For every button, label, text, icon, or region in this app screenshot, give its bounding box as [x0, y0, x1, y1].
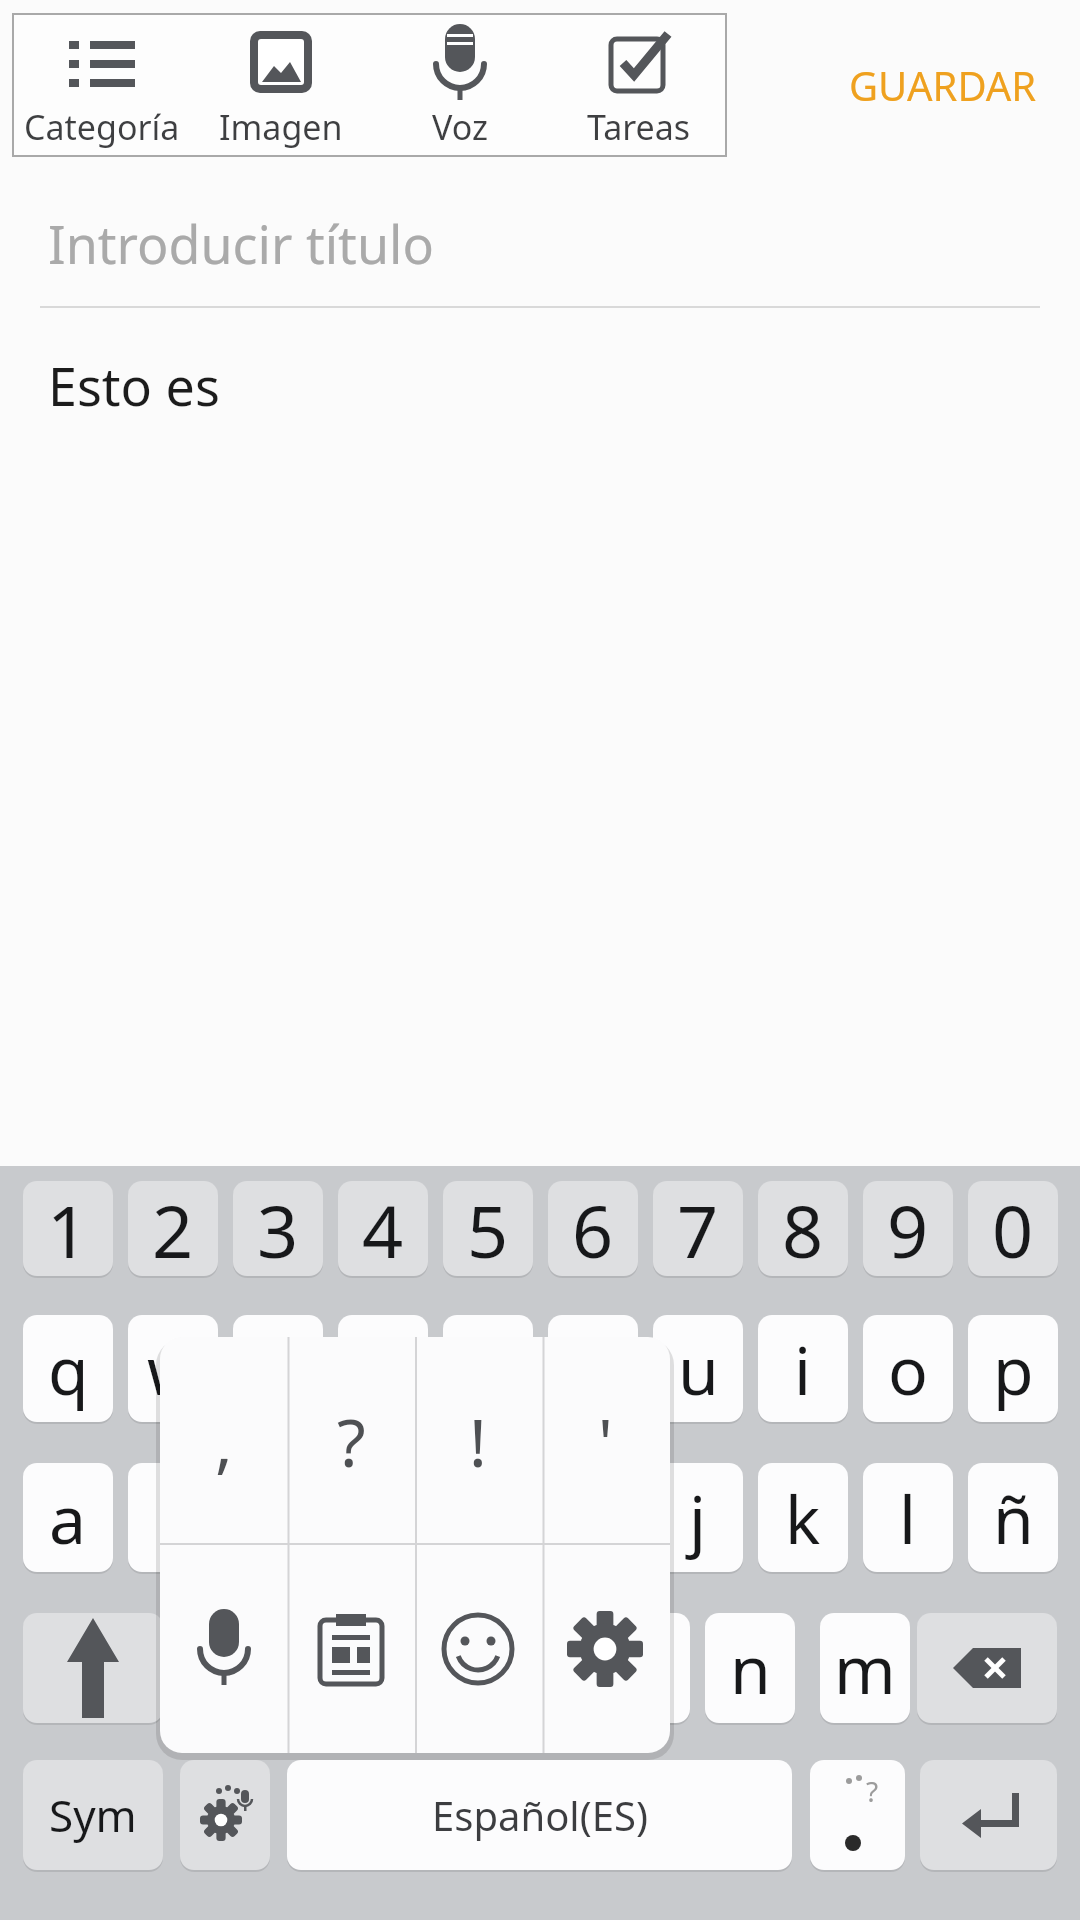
- button[interactable]: g: [443, 1463, 533, 1572]
- staticText: b: [625, 1623, 666, 1713]
- staticText: GUARDAR: [849, 58, 1037, 112]
- button[interactable]: f: [338, 1463, 428, 1572]
- button[interactable]: Categoría: [12, 20, 191, 154]
- staticText: ?: [866, 1772, 879, 1808]
- button[interactable]: p: [968, 1315, 1058, 1422]
- staticText: n: [730, 1623, 771, 1713]
- staticText: j: [689, 1473, 707, 1563]
- staticText: c: [419, 1623, 451, 1713]
- button[interactable]: Imagen: [191, 20, 370, 154]
- button[interactable]: 9: [863, 1181, 953, 1276]
- staticText: z: [209, 1623, 241, 1713]
- staticText: k: [785, 1473, 821, 1563]
- button[interactable]: 3: [233, 1181, 323, 1276]
- button[interactable]: a: [23, 1463, 113, 1572]
- button[interactable]: 2: [128, 1181, 218, 1276]
- button[interactable]: t: [443, 1315, 533, 1422]
- button[interactable]: [287, 1544, 415, 1753]
- button[interactable]: [160, 1544, 288, 1753]
- staticText: h: [573, 1473, 614, 1563]
- staticText: Voz: [432, 104, 488, 150]
- button[interactable]: k: [758, 1463, 848, 1572]
- button[interactable]: m: [820, 1613, 910, 1723]
- button[interactable]: ñ: [968, 1463, 1058, 1572]
- button[interactable]: ?: [287, 1337, 415, 1544]
- button[interactable]: x: [285, 1613, 375, 1723]
- staticText: q: [48, 1324, 89, 1414]
- button[interactable]: 5: [443, 1181, 533, 1276]
- staticText: u: [678, 1324, 719, 1414]
- button[interactable]: Sym: [23, 1760, 163, 1870]
- staticText: ñ: [993, 1473, 1034, 1563]
- button[interactable]: Tareas: [549, 20, 728, 154]
- button[interactable]: h: [548, 1463, 638, 1572]
- staticText: 7: [677, 1181, 719, 1276]
- button[interactable]: !: [414, 1337, 542, 1544]
- button[interactable]: i: [758, 1315, 848, 1422]
- button[interactable]: ,: [160, 1337, 288, 1544]
- staticText: e: [259, 1324, 297, 1414]
- button[interactable]: 7: [653, 1181, 743, 1276]
- button[interactable]: Español(ES): [287, 1760, 792, 1870]
- staticText: m: [834, 1623, 896, 1713]
- staticText: o: [888, 1324, 928, 1414]
- staticText: x: [313, 1623, 348, 1713]
- staticText: 8: [782, 1181, 824, 1276]
- staticText: d: [258, 1473, 299, 1563]
- button[interactable]: c: [390, 1613, 480, 1723]
- staticText: 3: [257, 1181, 299, 1276]
- button[interactable]: [414, 1544, 542, 1753]
- staticText: i: [794, 1324, 812, 1414]
- button[interactable]: [920, 1760, 1057, 1870]
- button[interactable]: Voz: [370, 20, 549, 154]
- button[interactable]: n: [705, 1613, 795, 1723]
- button[interactable]: o: [863, 1315, 953, 1422]
- button[interactable]: w: [128, 1315, 218, 1422]
- button[interactable]: d: [233, 1463, 323, 1572]
- staticText: w: [147, 1324, 199, 1414]
- button[interactable]: e: [233, 1315, 323, 1422]
- staticText: 6: [572, 1181, 614, 1276]
- staticText: v: [523, 1623, 557, 1713]
- button[interactable]: s: [128, 1463, 218, 1572]
- staticText: Imagen: [219, 104, 343, 150]
- staticText: Español(ES): [432, 1788, 648, 1842]
- staticText: ': [598, 1396, 613, 1486]
- staticText: l: [899, 1473, 917, 1563]
- staticText: !: [469, 1396, 487, 1486]
- button[interactable]: v: [495, 1613, 585, 1723]
- button[interactable]: GUARDAR: [830, 54, 1056, 116]
- staticText: Tareas: [587, 104, 691, 150]
- button[interactable]: [810, 1760, 905, 1870]
- staticText: 4: [362, 1181, 404, 1276]
- staticText: 5: [467, 1181, 509, 1276]
- staticText: p: [993, 1324, 1034, 1414]
- button[interactable]: [541, 1544, 669, 1753]
- button[interactable]: b: [600, 1613, 690, 1723]
- button[interactable]: u: [653, 1315, 743, 1422]
- staticText: Categoría: [24, 104, 180, 150]
- button[interactable]: r: [338, 1315, 428, 1422]
- button[interactable]: z: [180, 1613, 270, 1723]
- staticText: Esto es: [48, 350, 220, 421]
- button[interactable]: j: [653, 1463, 743, 1572]
- staticText: 0: [992, 1181, 1034, 1276]
- button[interactable]: 8: [758, 1181, 848, 1276]
- staticText: s: [157, 1473, 189, 1563]
- button[interactable]: q: [23, 1315, 113, 1422]
- staticText: 9: [887, 1181, 929, 1276]
- button[interactable]: ': [541, 1337, 669, 1544]
- button[interactable]: y: [548, 1315, 638, 1422]
- button[interactable]: 1: [23, 1181, 113, 1276]
- button[interactable]: 6: [548, 1181, 638, 1276]
- button[interactable]: 4: [338, 1181, 428, 1276]
- button[interactable]: 0: [968, 1181, 1058, 1276]
- button[interactable]: [180, 1760, 270, 1870]
- button[interactable]: l: [863, 1463, 953, 1572]
- button[interactable]: [23, 1613, 163, 1723]
- button[interactable]: [917, 1613, 1057, 1723]
- staticText: ,: [215, 1396, 233, 1486]
